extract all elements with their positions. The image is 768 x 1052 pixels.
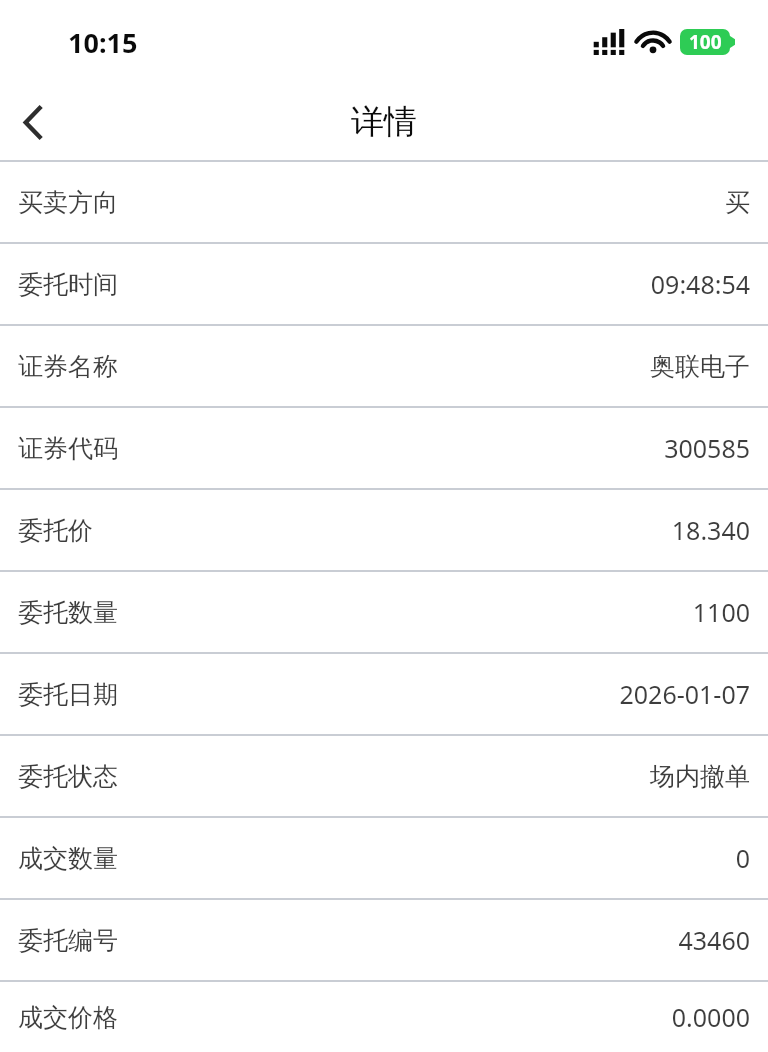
- staticText: 09:48:54: [650, 267, 750, 301]
- button[interactable]: 买卖方向: [0, 162, 768, 242]
- staticText: 43460: [678, 923, 750, 957]
- staticText: 委托状态: [18, 761, 118, 792]
- staticText: 委托价: [18, 515, 93, 546]
- staticText: 委托时间: [18, 269, 118, 300]
- staticText: 0.0000: [671, 1000, 750, 1034]
- staticText: 证券代码: [18, 433, 118, 464]
- button[interactable]: 成交数量: [0, 818, 768, 898]
- button[interactable]: 证券名称: [0, 326, 768, 406]
- staticText: 买卖方向: [18, 187, 118, 218]
- button[interactable]: Back: [0, 90, 64, 154]
- staticText: 奥联电子: [650, 351, 750, 382]
- staticText: 2026-01-07: [619, 677, 750, 711]
- staticText: 成交价格: [18, 1002, 118, 1033]
- button[interactable]: 委托状态: [0, 736, 768, 816]
- staticText: 委托日期: [18, 679, 118, 710]
- staticText: 委托编号: [18, 925, 118, 956]
- button[interactable]: 委托日期: [0, 654, 768, 734]
- staticText: 10:15: [68, 24, 138, 61]
- staticText: 0: [735, 841, 750, 875]
- staticText: 委托数量: [18, 597, 118, 628]
- button[interactable]: 委托编号: [0, 900, 768, 980]
- staticText: 300585: [664, 431, 750, 465]
- staticText: 证券名称: [18, 351, 118, 382]
- staticText: 买: [725, 187, 750, 218]
- button[interactable]: 委托数量: [0, 572, 768, 652]
- staticText: 18.340: [671, 513, 750, 547]
- button[interactable]: 委托价: [0, 490, 768, 570]
- staticText: 成交数量: [18, 843, 118, 874]
- staticText: 详情: [351, 101, 417, 143]
- staticText: 100: [689, 29, 722, 55]
- button[interactable]: 证券代码: [0, 408, 768, 488]
- button[interactable]: 成交价格: [0, 982, 768, 1052]
- button[interactable]: 委托时间: [0, 244, 768, 324]
- staticText: 场内撤单: [650, 761, 750, 792]
- staticText: 1100: [692, 595, 750, 629]
